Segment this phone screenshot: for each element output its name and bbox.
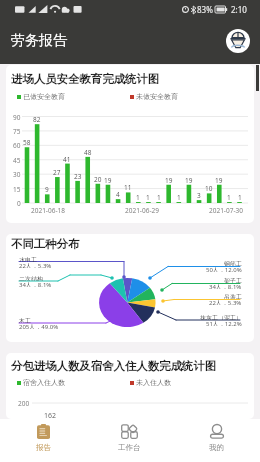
staticText: 4 (116, 190, 120, 199)
button[interactable]: Profile (226, 29, 250, 53)
staticText: 1 (227, 193, 231, 202)
staticText: 11 (124, 183, 132, 192)
staticText: 抹灰工（泥工） (200, 314, 242, 320)
staticText: 架子工 (224, 277, 242, 283)
staticText: 58 (23, 138, 31, 147)
staticText: 1 (136, 193, 140, 202)
staticText: 1 (157, 193, 161, 202)
staticText: 19 (215, 176, 223, 185)
staticText: 205人，49.0% (19, 323, 59, 329)
staticText: 19 (104, 176, 112, 185)
staticText: 20 (94, 175, 102, 184)
staticText: 41 (63, 155, 71, 164)
staticText: 报告 (36, 443, 51, 452)
staticText: 27 (53, 168, 61, 177)
staticText: 19 (165, 176, 173, 185)
staticText: 进场人员安全教育完成统计图 (11, 72, 160, 86)
staticText: 200 (18, 399, 30, 408)
button[interactable]: 我的 (173, 419, 260, 462)
staticText: 水电工 (19, 256, 37, 262)
staticText: 15 (13, 185, 21, 194)
staticText: 10 (205, 184, 213, 193)
staticText: 2021-06-29 (125, 206, 159, 215)
staticText: 吊装工 (224, 293, 242, 299)
staticText: 1 (238, 193, 242, 202)
staticText: 工作台 (118, 443, 141, 452)
staticText: 不同工种分布 (11, 237, 80, 251)
button[interactable]: 报告 (0, 419, 86, 462)
staticText: 90 (13, 113, 21, 122)
staticText: 82 (33, 115, 41, 124)
staticText: 3 (197, 191, 201, 200)
staticText: 22人，5.3% (19, 262, 52, 268)
staticText: 34人，8.1% (19, 281, 52, 287)
staticText: 50人，12.0% (206, 266, 242, 272)
staticText: 二次结构 (19, 275, 43, 281)
staticText: 宿舍入住人数 (23, 378, 65, 387)
staticText: 劳务报告 (11, 32, 67, 50)
staticText: 1 (177, 193, 181, 202)
staticText: 45 (13, 156, 21, 165)
staticText: 75 (13, 127, 21, 136)
staticText: 钢筋工 (224, 260, 242, 266)
staticText: 已做安全教育 (23, 92, 65, 101)
staticText: 162 (44, 411, 57, 419)
staticText: 19 (185, 176, 193, 185)
staticText: 83% (197, 4, 213, 15)
staticText: 2021-06-18 (31, 206, 65, 215)
staticText: 1 (146, 193, 150, 202)
staticText: 分包进场人数及宿舍入住人数完成统计图 (11, 359, 217, 373)
staticText: 我的 (209, 443, 224, 452)
button[interactable]: 工作台 (86, 419, 173, 462)
staticText: 30 (13, 170, 21, 179)
staticText: 60 (13, 141, 21, 150)
staticText: 34人，8.1% (209, 283, 242, 289)
staticText: 2021-07-30 (209, 206, 243, 215)
staticText: 0 (17, 199, 21, 208)
staticText: 51人，12.2% (206, 320, 242, 326)
staticText: 22人，5.3% (209, 299, 242, 305)
staticText: 9 (45, 185, 49, 194)
staticText: 未做安全教育 (136, 92, 178, 101)
staticText: 未入住人数 (136, 378, 171, 387)
staticText: 23 (74, 172, 82, 181)
staticText: 木工 (19, 317, 31, 323)
staticText: 2:10 (231, 4, 247, 15)
staticText: 48 (84, 148, 92, 157)
